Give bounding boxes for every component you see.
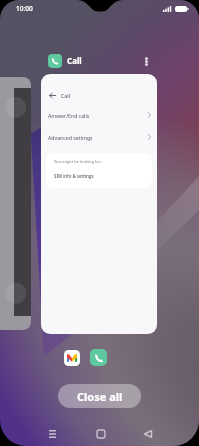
staticText: Close all [77, 389, 123, 404]
staticText: 10:00 [16, 4, 33, 13]
button[interactable]: More options [139, 54, 153, 68]
staticText: Answer/End calls [48, 112, 90, 119]
button[interactable]: Gmail [64, 350, 80, 366]
button[interactable]: Back [46, 89, 58, 101]
button[interactable]: Close all [58, 384, 141, 408]
button[interactable]: Answer/End calls [41, 104, 157, 126]
button[interactable]: Advanced settings [41, 126, 157, 148]
staticText: You might be looking for: [54, 159, 102, 164]
staticText: Advanced settings [48, 134, 93, 141]
button[interactable] [0, 77, 31, 330]
staticText: Call [67, 55, 82, 66]
button[interactable]: Phone [90, 349, 107, 366]
button[interactable]: You might be looking for: [46, 153, 152, 188]
button[interactable]: Back [136, 422, 159, 445]
button[interactable]: Recent apps [41, 422, 64, 445]
staticText: SIM info & settings [54, 173, 94, 179]
staticText: Call [61, 92, 71, 99]
button[interactable]: Home [89, 422, 112, 445]
